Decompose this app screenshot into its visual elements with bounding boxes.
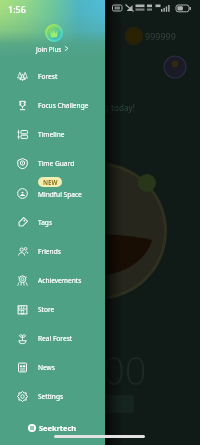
button[interactable]: Timeline <box>0 120 105 149</box>
button[interactable]: Seekrtech <box>0 421 105 435</box>
button[interactable]: News <box>0 353 105 382</box>
button[interactable]: Store <box>0 295 105 324</box>
staticText: Join Plus <box>36 45 62 54</box>
button[interactable]: Join Plus <box>0 43 105 55</box>
staticText: News <box>38 363 55 372</box>
staticText: Timeline <box>38 130 65 139</box>
button[interactable]: Friends <box>0 237 105 266</box>
staticText: g today! <box>104 102 135 113</box>
staticText: 00 <box>103 344 147 396</box>
staticText: Settings <box>38 392 64 401</box>
staticText: Real Forest <box>38 334 73 343</box>
button[interactable]: Real Forest <box>0 324 105 353</box>
staticText: 1:56 <box>8 3 26 15</box>
staticText: NEW <box>43 178 58 186</box>
button[interactable]: Time Guard <box>0 149 105 178</box>
staticText: 999999 <box>145 30 176 42</box>
button[interactable]: Tags <box>0 208 105 237</box>
staticText: Friends <box>38 247 61 256</box>
staticText: Store <box>38 305 55 314</box>
staticText: Focus Challenge <box>38 101 89 110</box>
button[interactable]: NEW <box>0 179 105 208</box>
staticText: Forest <box>38 72 58 81</box>
button[interactable]: Join Plus profile <box>45 24 63 42</box>
button[interactable]: Forest <box>0 62 105 91</box>
button[interactable]: Settings <box>0 382 105 411</box>
staticText: Time Guard <box>38 159 75 168</box>
staticText: Tags <box>38 218 53 227</box>
button[interactable]: Focus Challenge <box>0 91 105 120</box>
staticText: Seekrtech <box>39 423 77 433</box>
staticText: Mindful Space <box>38 190 82 199</box>
staticText: Achievements <box>38 276 82 285</box>
button[interactable]: Achievements <box>0 266 105 295</box>
